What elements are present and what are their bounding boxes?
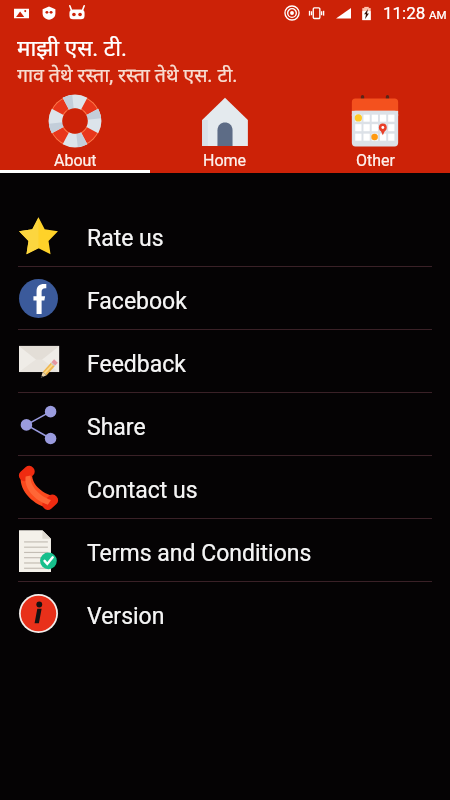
staticText: Facebook [87,288,187,315]
staticText: Home [203,151,247,170]
button[interactable]: Facebook [0,267,450,330]
staticText: Share [87,414,146,441]
button[interactable]: Version [0,582,450,645]
staticText: Other [356,151,395,170]
button[interactable]: Terms and Conditions [0,519,450,582]
staticText: 11:28 [383,3,426,23]
button[interactable]: About [0,88,150,173]
button[interactable]: Share [0,393,450,456]
staticText: About [54,151,97,170]
button[interactable]: Contact us [0,456,450,519]
button[interactable]: Rate us [0,204,450,267]
staticText: AM [429,8,447,21]
staticText: Feedback [87,351,186,378]
button[interactable]: Feedback [0,330,450,393]
staticText: Contact us [87,477,198,504]
staticText: गाव तेथे रस्ता, रस्ता तेथे एस. टी. [17,61,238,88]
button[interactable]: Other [300,88,450,173]
staticText: Terms and Conditions [87,540,312,567]
staticText: माझी एस. टी. [17,32,127,63]
staticText: Version [87,603,165,630]
button[interactable]: Home [150,88,300,173]
staticText: Rate us [87,225,164,252]
